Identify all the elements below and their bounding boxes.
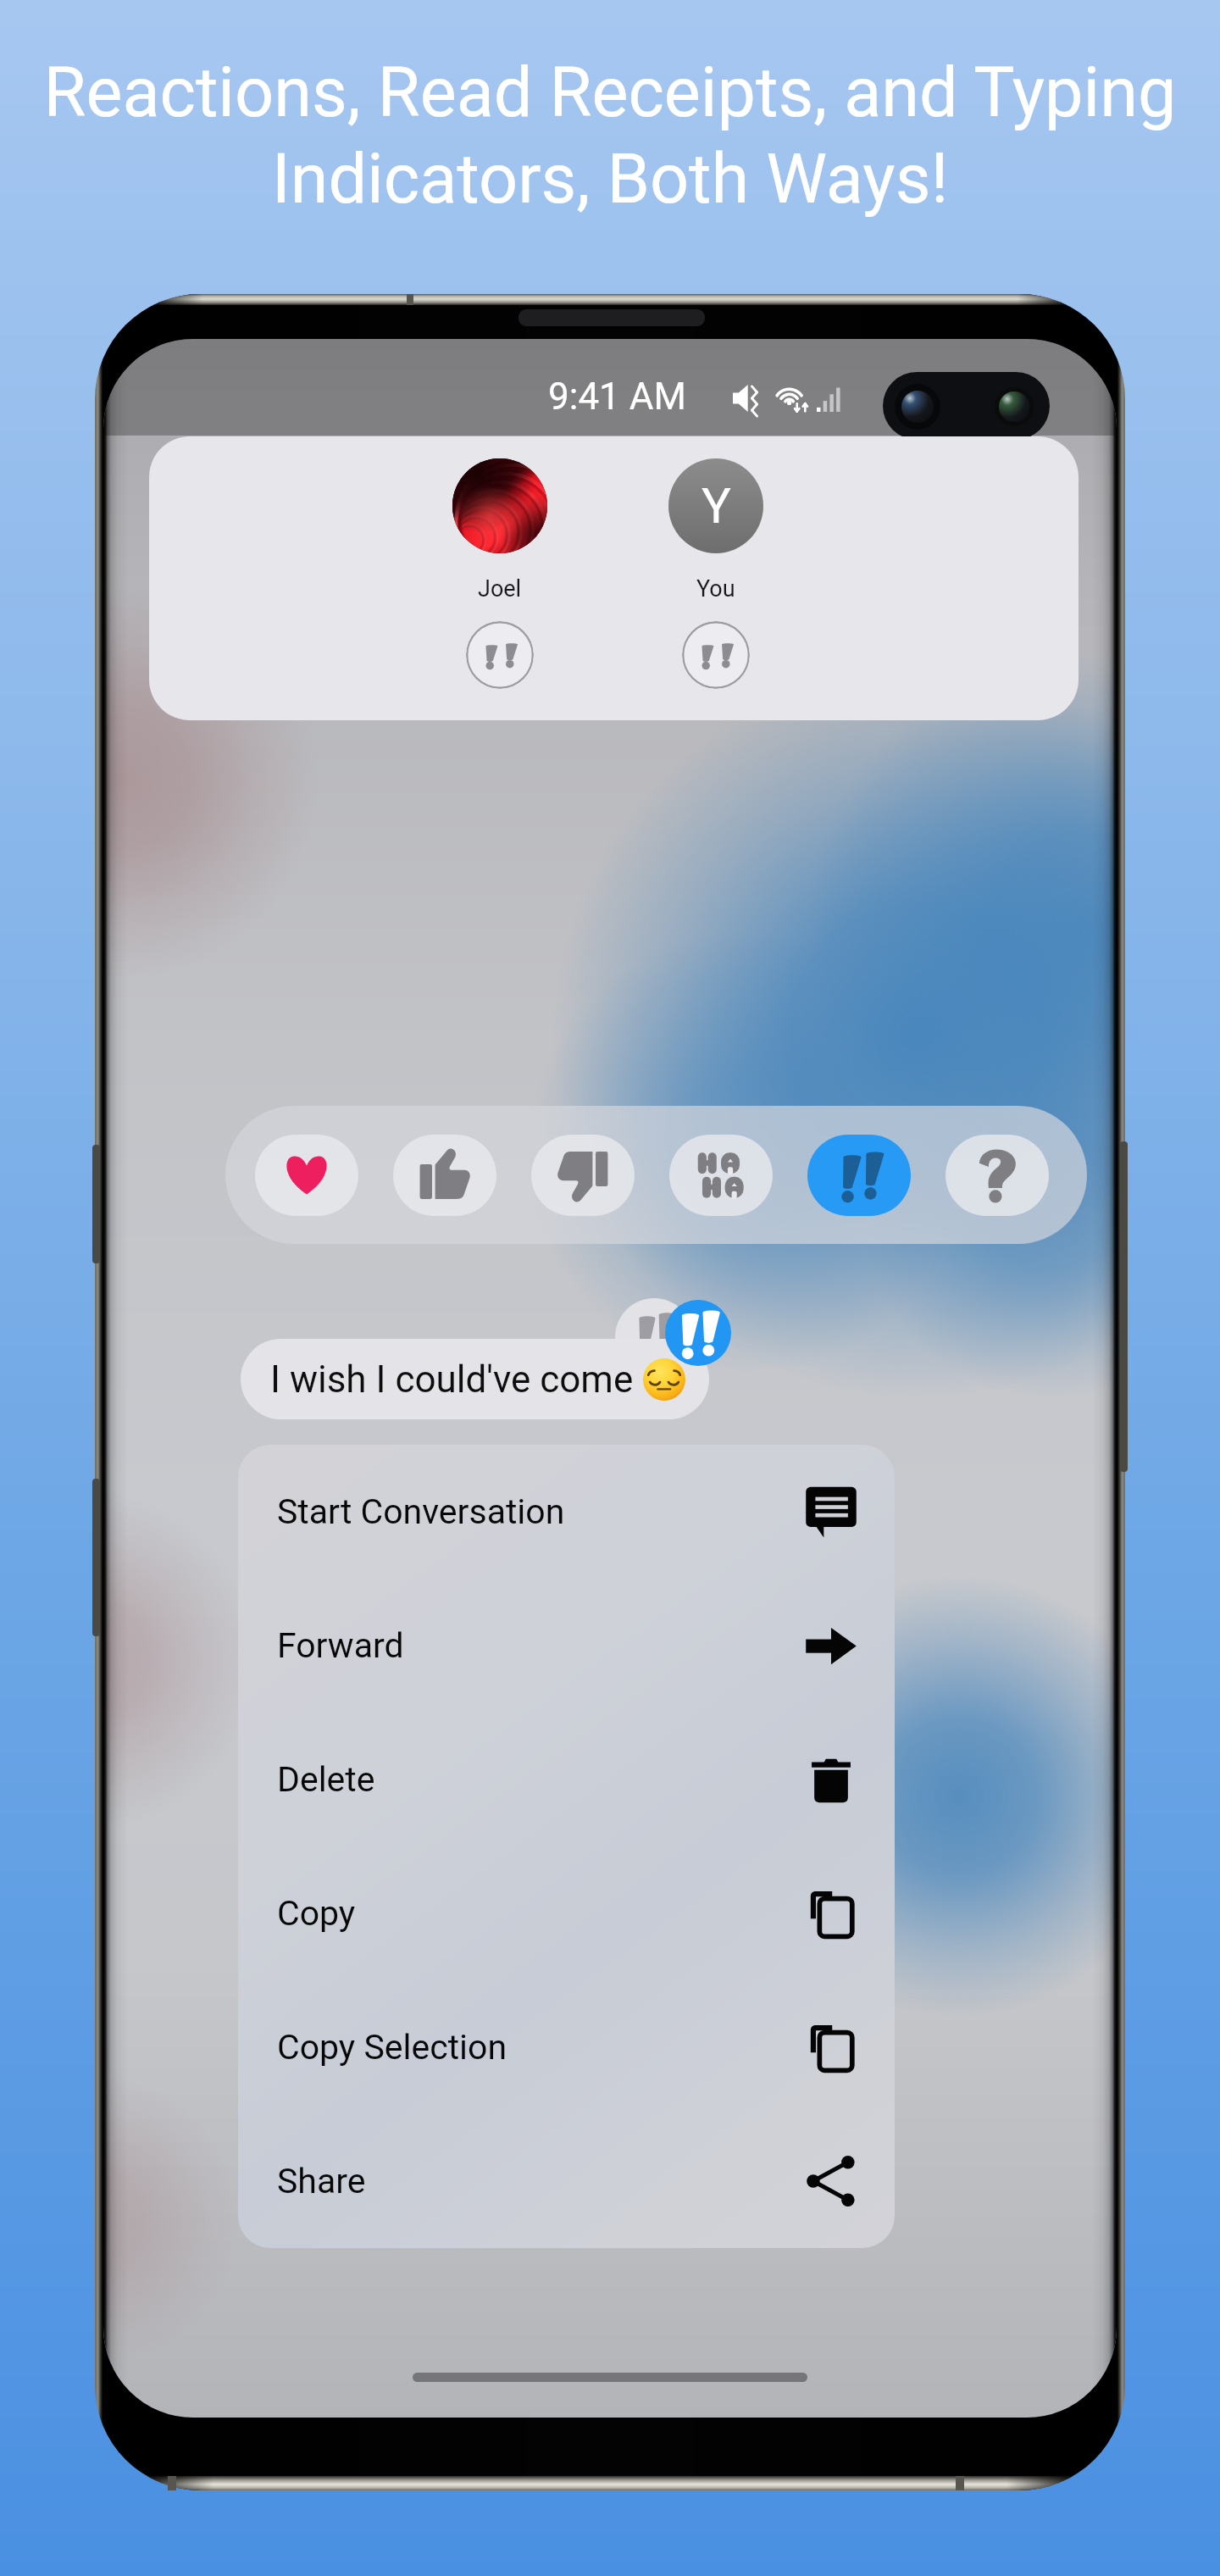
button[interactable]: Like	[393, 1135, 496, 1216]
staticText: I wish I could've come	[270, 1357, 634, 1402]
button[interactable]: Question	[945, 1135, 1049, 1216]
staticText: Copy	[277, 1893, 805, 1934]
button[interactable]: Copy	[238, 1846, 895, 1980]
button[interactable]: Exclaim	[807, 1135, 911, 1216]
staticText: Start Conversation	[277, 1491, 805, 1532]
staticText: Reactions, Read Receipts, and Typing Ind…	[0, 53, 1220, 219]
button[interactable]: Love	[255, 1135, 358, 1216]
button[interactable]: I wish I could've come	[241, 1339, 709, 1419]
button[interactable]: Dislike	[531, 1135, 635, 1216]
staticText: Joel	[478, 575, 522, 602]
staticText: Copy Selection	[277, 2027, 805, 2068]
button[interactable]: Y	[668, 458, 763, 553]
staticText: 9:41 AM	[548, 375, 686, 419]
button[interactable]: Copy Selection	[238, 1980, 895, 2114]
button[interactable]: Delete	[238, 1713, 895, 1846]
button[interactable]: Exclaim reaction	[665, 1300, 731, 1366]
staticText: Y	[701, 477, 731, 535]
staticText: Forward	[277, 1625, 805, 1666]
button[interactable]: Reaction	[682, 621, 750, 689]
staticText: Share	[277, 2161, 805, 2201]
button[interactable]: Haha	[669, 1135, 773, 1216]
button[interactable]	[452, 458, 547, 553]
button[interactable]: Share	[238, 2114, 895, 2248]
button[interactable]: Start Conversation	[238, 1445, 895, 1579]
button[interactable]: Reaction	[466, 621, 534, 689]
staticText: You	[696, 575, 735, 602]
button[interactable]: Forward	[238, 1579, 895, 1713]
staticText: Delete	[277, 1759, 805, 1800]
